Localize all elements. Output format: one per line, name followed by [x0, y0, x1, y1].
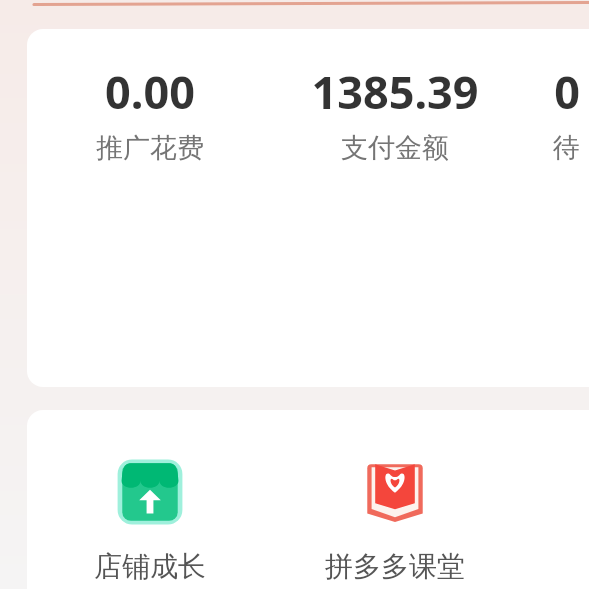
staticText: 推广花费: [96, 131, 204, 165]
button[interactable]: 0: [517, 61, 589, 185]
button[interactable]: Pinduoduo class: [272, 410, 517, 589]
button[interactable]: Shop growth: [27, 410, 272, 589]
staticText: 0: [554, 61, 580, 122]
staticText: 1385.39: [311, 61, 479, 122]
staticText: 支付金额: [341, 131, 449, 165]
staticText: 店铺成长: [94, 549, 206, 584]
button[interactable]: 1385.39: [272, 61, 517, 185]
staticText: 待: [553, 131, 580, 165]
staticText: 拼多多课堂: [325, 549, 465, 584]
button[interactable]: 0.00: [27, 61, 272, 185]
staticText: 0.00: [105, 61, 195, 122]
